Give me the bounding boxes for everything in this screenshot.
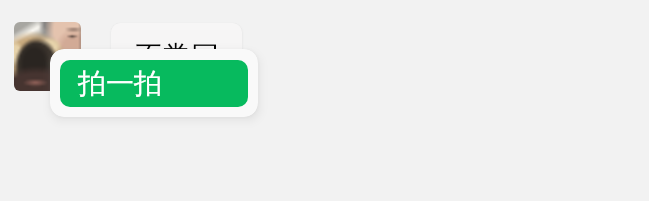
- staticText: 拍一拍: [78, 66, 162, 101]
- staticText: 不常回: [135, 39, 219, 74]
- button[interactable]: 不常回: [111, 23, 242, 75]
- button[interactable]: [14, 22, 81, 91]
- button[interactable]: 拍一拍: [60, 60, 248, 107]
